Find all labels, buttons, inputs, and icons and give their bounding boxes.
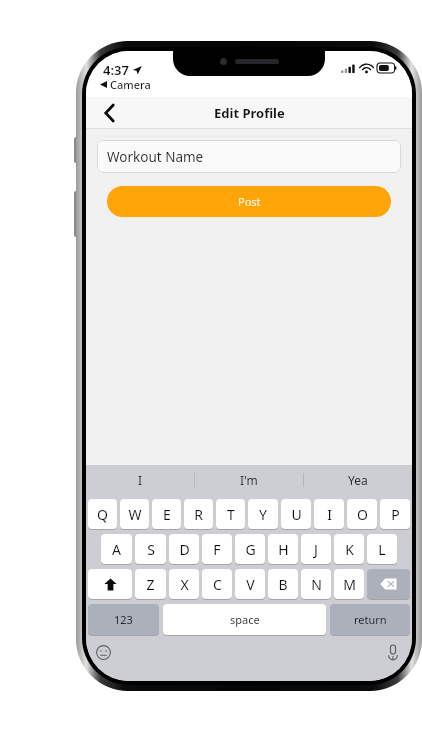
button[interactable]: Back bbox=[92, 97, 126, 129]
button[interactable]: T bbox=[216, 499, 245, 529]
staticText: Yea bbox=[348, 472, 368, 488]
staticText: P bbox=[391, 505, 400, 524]
staticText: Z bbox=[146, 575, 155, 594]
staticText: H bbox=[278, 540, 289, 559]
button[interactable]: A bbox=[101, 534, 132, 564]
button[interactable]: I bbox=[86, 465, 194, 494]
button[interactable]: S bbox=[135, 534, 166, 564]
button[interactable]: P bbox=[380, 499, 410, 529]
button[interactable]: Y bbox=[248, 499, 278, 529]
staticText: T bbox=[227, 505, 235, 524]
button[interactable]: Post bbox=[107, 186, 391, 217]
staticText: B bbox=[278, 575, 288, 594]
staticText: Workout Name bbox=[107, 148, 204, 166]
staticText: E bbox=[163, 505, 171, 524]
button[interactable]: M bbox=[334, 569, 364, 599]
button[interactable]: Shift bbox=[88, 569, 132, 599]
staticText: O bbox=[357, 505, 368, 524]
button[interactable]: Workout Name bbox=[97, 140, 401, 173]
staticText: D bbox=[179, 540, 190, 559]
button[interactable]: C bbox=[202, 569, 232, 599]
button[interactable]: V bbox=[235, 569, 265, 599]
staticText: X bbox=[180, 575, 189, 594]
staticText: R bbox=[194, 505, 203, 524]
button[interactable]: U bbox=[281, 499, 311, 529]
button[interactable]: F bbox=[202, 534, 232, 564]
button[interactable]: Dictation bbox=[382, 641, 404, 663]
button[interactable]: 123 bbox=[88, 604, 159, 635]
staticText: K bbox=[345, 540, 354, 559]
staticText: 123 bbox=[114, 612, 133, 627]
button[interactable]: Backspace bbox=[367, 569, 410, 599]
button[interactable]: X bbox=[169, 569, 199, 599]
button[interactable]: E bbox=[152, 499, 181, 529]
staticText: space bbox=[230, 612, 260, 627]
staticText: L bbox=[378, 540, 386, 559]
button[interactable]: G bbox=[235, 534, 265, 564]
staticText: Q bbox=[97, 505, 108, 524]
staticText: 4:37 bbox=[103, 61, 129, 79]
button[interactable]: Q bbox=[88, 499, 117, 529]
staticText: F bbox=[213, 540, 221, 559]
button[interactable]: W bbox=[120, 499, 149, 529]
staticText: I bbox=[327, 505, 332, 524]
button[interactable]: O bbox=[347, 499, 377, 529]
button[interactable]: Yea bbox=[304, 465, 412, 494]
button[interactable]: R bbox=[184, 499, 213, 529]
button[interactable]: L bbox=[367, 534, 397, 564]
button[interactable]: B bbox=[268, 569, 298, 599]
staticText: Camera bbox=[110, 77, 151, 92]
staticText: U bbox=[291, 505, 302, 524]
button[interactable]: I bbox=[314, 499, 344, 529]
button[interactable]: K bbox=[334, 534, 364, 564]
button[interactable]: Z bbox=[135, 569, 166, 599]
button[interactable]: return bbox=[330, 604, 410, 635]
staticText: S bbox=[147, 540, 155, 559]
staticText: Post bbox=[238, 194, 261, 209]
staticText: Edit Profile bbox=[214, 104, 285, 122]
button[interactable]: J bbox=[301, 534, 331, 564]
staticText: C bbox=[213, 575, 222, 594]
staticText: I bbox=[138, 472, 143, 488]
staticText: J bbox=[314, 540, 318, 559]
staticText: W bbox=[128, 505, 142, 524]
staticText: Y bbox=[259, 505, 267, 524]
button[interactable]: I'm bbox=[195, 465, 303, 494]
staticText: A bbox=[112, 540, 121, 559]
staticText: M bbox=[343, 575, 356, 594]
staticText: N bbox=[311, 575, 322, 594]
button[interactable]: space bbox=[163, 604, 326, 635]
button[interactable]: Emoji bbox=[92, 641, 114, 663]
staticText: I'm bbox=[240, 472, 258, 488]
staticText: G bbox=[245, 540, 256, 559]
staticText: return bbox=[354, 612, 387, 627]
button[interactable]: N bbox=[301, 569, 331, 599]
button[interactable]: D bbox=[169, 534, 199, 564]
staticText: V bbox=[246, 575, 255, 594]
button[interactable]: H bbox=[268, 534, 298, 564]
